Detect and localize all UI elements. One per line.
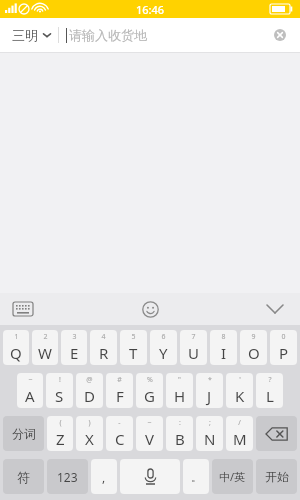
- button[interactable]: !: [46, 373, 73, 408]
- staticText: ~: [28, 375, 33, 385]
- button[interactable]: Emoji: [136, 295, 164, 323]
- staticText: 。: [191, 470, 202, 484]
- button[interactable]: Hide keyboard: [262, 296, 288, 322]
- button[interactable]: 2: [32, 330, 58, 365]
- button[interactable]: Voice input: [120, 459, 180, 494]
- button[interactable]: :: [166, 416, 193, 451]
- button[interactable]: Clear: [268, 23, 292, 47]
- staticText: 请输入收货地: [69, 27, 268, 43]
- staticText: ;: [209, 418, 211, 428]
- button[interactable]: ~: [17, 373, 43, 408]
- staticText: S: [55, 386, 64, 406]
- staticText: Z: [56, 429, 65, 449]
- staticText: N: [204, 429, 216, 449]
- staticText: 三明: [12, 27, 38, 43]
- button[interactable]: *: [196, 373, 223, 408]
- staticText: -: [118, 418, 121, 428]
- staticText: F: [116, 386, 124, 406]
- button[interactable]: 3: [61, 330, 87, 365]
- staticText: :: [179, 418, 181, 428]
- staticText: ': [239, 375, 241, 385]
- button[interactable]: ?: [256, 373, 283, 408]
- staticText: %: [147, 375, 153, 385]
- button[interactable]: ~: [136, 416, 163, 451]
- button[interactable]: (: [47, 416, 73, 451]
- button[interactable]: ;: [196, 416, 223, 451]
- staticText: ": [178, 375, 181, 385]
- staticText: W: [38, 343, 52, 363]
- staticText: 开始: [265, 469, 289, 484]
- button[interactable]: #: [106, 373, 133, 408]
- staticText: 123: [57, 469, 78, 485]
- staticText: A: [25, 386, 35, 406]
- button[interactable]: ,: [91, 459, 117, 494]
- staticText: D: [84, 386, 95, 406]
- staticText: B: [175, 429, 185, 449]
- button[interactable]: @: [76, 373, 103, 408]
- button[interactable]: 中/英: [212, 459, 253, 494]
- button[interactable]: 7: [180, 330, 207, 365]
- button[interactable]: %: [136, 373, 163, 408]
- staticText: 8: [221, 332, 226, 342]
- staticText: Q: [10, 343, 22, 363]
- button[interactable]: ": [166, 373, 193, 408]
- staticText: P: [279, 343, 289, 363]
- button[interactable]: 开始: [256, 459, 297, 494]
- staticText: ?: [268, 375, 272, 385]
- staticText: (: [59, 418, 62, 428]
- button[interactable]: 9: [240, 330, 267, 365]
- button[interactable]: 6: [150, 330, 177, 365]
- button[interactable]: ): [76, 416, 103, 451]
- staticText: ): [88, 418, 91, 428]
- staticText: E: [70, 343, 79, 363]
- staticText: 9: [251, 332, 256, 342]
- button[interactable]: 5: [120, 330, 147, 365]
- staticText: @: [86, 375, 93, 385]
- staticText: T: [129, 343, 138, 363]
- staticText: L: [266, 386, 274, 406]
- staticText: U: [188, 343, 199, 363]
- button[interactable]: 0: [270, 330, 297, 365]
- button[interactable]: 123: [47, 459, 88, 494]
- staticText: 16:46: [136, 2, 165, 17]
- staticText: C: [115, 429, 125, 449]
- staticText: X: [85, 429, 94, 449]
- staticText: Y: [159, 343, 168, 363]
- staticText: J: [207, 386, 212, 406]
- button[interactable]: 分词: [3, 416, 44, 451]
- staticText: 1: [14, 332, 19, 342]
- staticText: 符: [17, 469, 30, 485]
- button[interactable]: 1: [3, 330, 29, 365]
- button[interactable]: -: [106, 416, 133, 451]
- staticText: H: [174, 386, 186, 406]
- staticText: G: [144, 386, 155, 406]
- button[interactable]: 8: [210, 330, 237, 365]
- staticText: M: [233, 429, 247, 449]
- staticText: 0: [281, 332, 286, 342]
- button[interactable]: 符: [3, 459, 44, 494]
- button[interactable]: 。: [183, 459, 209, 494]
- staticText: #: [117, 375, 122, 385]
- staticText: 分词: [12, 426, 36, 441]
- button[interactable]: Backspace: [256, 416, 297, 451]
- staticText: I: [221, 343, 227, 363]
- staticText: ,: [102, 469, 106, 485]
- button[interactable]: ': [226, 373, 253, 408]
- staticText: 7: [191, 332, 196, 342]
- button[interactable]: 4: [90, 330, 117, 365]
- button[interactable]: Keyboard layout: [10, 296, 36, 322]
- staticText: 5: [131, 332, 136, 342]
- button[interactable]: /: [226, 416, 253, 451]
- staticText: *: [208, 375, 212, 385]
- staticText: 中/英: [219, 469, 246, 484]
- staticText: 6: [161, 332, 166, 342]
- staticText: 2: [43, 332, 48, 342]
- button[interactable]: 三明: [12, 27, 58, 43]
- staticText: V: [145, 429, 155, 449]
- staticText: 4: [101, 332, 106, 342]
- staticText: K: [235, 386, 245, 406]
- staticText: O: [248, 343, 260, 363]
- staticText: !: [59, 375, 61, 385]
- staticText: /: [238, 418, 241, 428]
- staticText: ~: [147, 418, 152, 428]
